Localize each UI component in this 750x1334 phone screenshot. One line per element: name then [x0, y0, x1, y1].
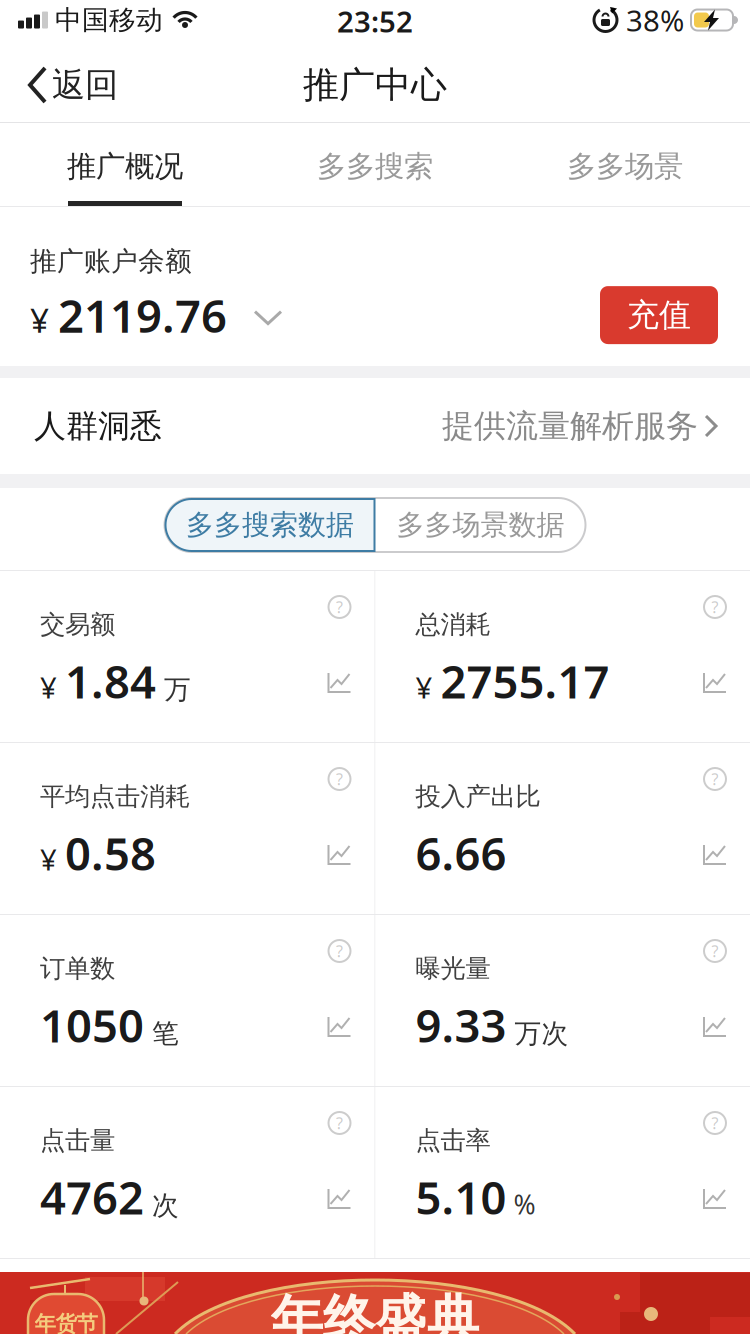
staticText: 曝光量: [415, 953, 490, 984]
staticText: 年终盛典: [271, 1288, 479, 1334]
staticText: 平均点击消耗: [40, 781, 190, 812]
button[interactable]: 返回: [0, 40, 118, 122]
button[interactable]: 展开余额详情: [30, 285, 281, 345]
staticText: ¥: [40, 668, 65, 707]
staticText: 5.10: [415, 1167, 506, 1227]
button[interactable]: 推广概况: [0, 123, 250, 206]
staticText: ?: [711, 940, 718, 962]
staticText: 6.66: [415, 823, 506, 883]
staticText: 充值: [627, 295, 691, 335]
button[interactable]: 查看趋势图: [703, 845, 727, 914]
staticText: 总消耗: [415, 609, 490, 640]
staticText: 23:52: [337, 1, 413, 40]
staticText: 万: [156, 673, 191, 706]
staticText: 多多搜索数据: [186, 508, 354, 542]
staticText: 点击量: [40, 1125, 115, 1156]
button[interactable]: 指标说明: [704, 571, 726, 618]
button[interactable]: 人群洞悉: [0, 378, 750, 474]
staticText: 1.84: [65, 651, 156, 711]
staticText: 推广账户余额: [30, 245, 192, 278]
button[interactable]: 多多场景: [500, 123, 750, 206]
staticText: 2755.17: [440, 651, 609, 711]
staticText: 推广概况: [67, 148, 183, 184]
button[interactable]: 多多搜索: [250, 123, 500, 206]
button[interactable]: 指标说明: [704, 915, 726, 962]
staticText: ?: [336, 1112, 343, 1134]
staticText: 多多搜索: [317, 148, 433, 184]
staticText: ¥: [30, 298, 58, 342]
staticText: 点击率: [415, 1125, 490, 1156]
staticText: 中国移动: [55, 4, 163, 36]
button[interactable]: 查看趋势图: [327, 845, 351, 914]
button[interactable]: 指标说明: [704, 743, 726, 790]
button[interactable]: 指标说明: [704, 1087, 726, 1134]
button[interactable]: 查看趋势图: [327, 1017, 351, 1086]
staticText: 多多场景数据: [396, 508, 564, 542]
staticText: ?: [336, 940, 343, 962]
staticText: 2119.76: [58, 285, 227, 345]
staticText: ?: [336, 596, 343, 618]
staticText: 订单数: [40, 953, 115, 984]
staticText: 提供流量解析服务: [442, 406, 698, 446]
button[interactable]: 指标说明: [328, 915, 350, 962]
staticText: 多多场景: [567, 148, 683, 184]
button[interactable]: 指标说明: [328, 1087, 350, 1134]
button[interactable]: 多多场景数据: [375, 498, 585, 552]
staticText: 1050: [40, 995, 144, 1055]
button[interactable]: 指标说明: [328, 571, 350, 618]
staticText: 38%: [626, 0, 684, 39]
button[interactable]: 查看趋势图: [703, 1017, 727, 1086]
button[interactable]: 查看趋势图: [327, 1189, 351, 1258]
staticText: 9.33: [415, 995, 506, 1055]
staticText: 0.58: [65, 823, 156, 883]
staticText: %: [506, 1186, 535, 1222]
button[interactable]: 充值: [600, 286, 718, 344]
staticText: ?: [711, 596, 718, 618]
staticText: ¥: [415, 668, 440, 707]
staticText: 推广中心: [303, 63, 447, 107]
staticText: ?: [336, 768, 343, 790]
staticText: 人群洞悉: [34, 406, 162, 446]
staticText: ¥: [40, 840, 65, 879]
staticText: 万次: [506, 1017, 568, 1050]
staticText: 交易额: [40, 609, 115, 640]
staticText: ?: [711, 768, 718, 790]
button[interactable]: 年终盛典活动横幅: [0, 1272, 750, 1334]
staticText: 笔: [144, 1017, 179, 1050]
button[interactable]: 查看趋势图: [703, 673, 727, 742]
staticText: 返回: [52, 64, 118, 105]
staticText: 投入产出比: [415, 781, 540, 812]
staticText: 4762: [40, 1167, 144, 1227]
button[interactable]: 查看趋势图: [703, 1189, 727, 1258]
button[interactable]: 查看趋势图: [327, 673, 351, 742]
staticText: 年货节: [34, 1311, 97, 1334]
staticText: ?: [711, 1112, 718, 1134]
button[interactable]: 指标说明: [328, 743, 350, 790]
button[interactable]: 多多搜索数据: [164, 498, 375, 552]
staticText: 次: [144, 1189, 179, 1222]
